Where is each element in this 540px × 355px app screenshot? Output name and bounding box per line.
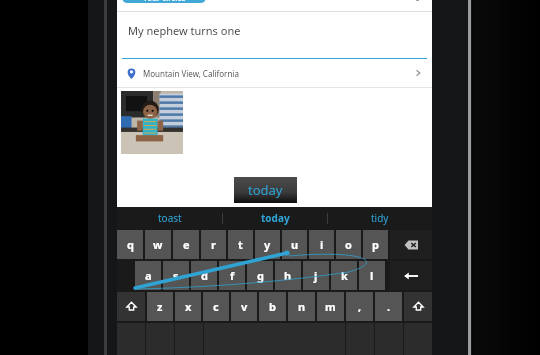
button[interactable]: v bbox=[231, 292, 257, 321]
staticText: y bbox=[264, 237, 271, 252]
button[interactable]: b bbox=[259, 292, 286, 321]
button[interactable]: . bbox=[375, 292, 402, 321]
button[interactable]: q bbox=[117, 230, 143, 259]
button[interactable]: t bbox=[228, 230, 253, 259]
button[interactable]: e bbox=[173, 230, 199, 259]
button[interactable]: j bbox=[303, 261, 329, 290]
button[interactable]: r bbox=[201, 230, 226, 259]
button[interactable]: , bbox=[346, 292, 373, 321]
button[interactable]: My nephew turns one bbox=[117, 12, 432, 58]
staticText: s bbox=[173, 268, 179, 283]
button[interactable]: Shift bbox=[404, 292, 432, 321]
button[interactable]: Enter bbox=[390, 261, 432, 290]
staticText: w bbox=[153, 237, 163, 252]
button[interactable]: Your circles bbox=[122, 0, 206, 3]
button[interactable]: Add bbox=[407, 0, 427, 1]
staticText: f bbox=[230, 268, 235, 283]
button[interactable] bbox=[121, 91, 183, 154]
button[interactable]: h bbox=[275, 261, 301, 290]
staticText: today bbox=[248, 181, 283, 199]
staticText: x bbox=[185, 299, 192, 314]
staticText: i bbox=[320, 237, 324, 252]
button[interactable]: a bbox=[135, 261, 161, 290]
button[interactable]: Mountain View, California bbox=[117, 59, 432, 87]
button[interactable]: Delete bbox=[390, 230, 432, 259]
staticText: v bbox=[241, 299, 248, 314]
staticText: u bbox=[291, 237, 299, 252]
button[interactable]: u bbox=[282, 230, 307, 259]
staticText: j bbox=[314, 268, 318, 283]
staticText: tidy bbox=[371, 211, 389, 225]
staticText: t bbox=[238, 237, 243, 252]
staticText: k bbox=[341, 268, 348, 283]
button[interactable]: y bbox=[255, 230, 280, 259]
button[interactable]: s bbox=[163, 261, 189, 290]
staticText: c bbox=[213, 299, 219, 314]
staticText: p bbox=[372, 237, 379, 252]
button[interactable]: g bbox=[247, 261, 273, 290]
button[interactable]: tidy bbox=[328, 207, 432, 229]
staticText: today bbox=[261, 211, 290, 225]
button[interactable]: toast bbox=[117, 207, 222, 229]
button[interactable]: x bbox=[175, 292, 201, 321]
staticText: o bbox=[345, 237, 352, 252]
button[interactable]: p bbox=[363, 230, 388, 259]
staticText: , bbox=[358, 299, 362, 314]
button[interactable]: today bbox=[223, 207, 327, 229]
button[interactable]: Shift bbox=[117, 292, 145, 321]
button[interactable]: f bbox=[219, 261, 245, 290]
button[interactable]: c bbox=[203, 292, 229, 321]
staticText: Mountain View, California bbox=[143, 68, 239, 79]
staticText: b bbox=[269, 299, 276, 314]
button[interactable]: i bbox=[309, 230, 334, 259]
button[interactable]: w bbox=[145, 230, 171, 259]
staticText: r bbox=[211, 237, 216, 252]
button[interactable]: n bbox=[288, 292, 315, 321]
button[interactable]: m bbox=[317, 292, 344, 321]
staticText: m bbox=[325, 299, 336, 314]
staticText: toast bbox=[158, 211, 182, 225]
staticText: . bbox=[387, 299, 391, 314]
button[interactable]: l bbox=[359, 261, 385, 290]
staticText: My nephew turns one bbox=[128, 23, 241, 38]
staticText: z bbox=[157, 299, 163, 314]
button[interactable]: d bbox=[191, 261, 217, 290]
staticText: g bbox=[257, 268, 264, 283]
staticText: h bbox=[284, 268, 292, 283]
button[interactable]: o bbox=[336, 230, 361, 259]
button[interactable]: k bbox=[331, 261, 357, 290]
staticText: Your circles bbox=[143, 0, 186, 3]
staticText: d bbox=[201, 268, 208, 283]
button[interactable]: z bbox=[147, 292, 173, 321]
staticText: n bbox=[298, 299, 306, 314]
staticText: e bbox=[183, 237, 190, 252]
staticText: l bbox=[370, 268, 374, 283]
staticText: q bbox=[127, 237, 134, 252]
staticText: a bbox=[145, 268, 152, 283]
